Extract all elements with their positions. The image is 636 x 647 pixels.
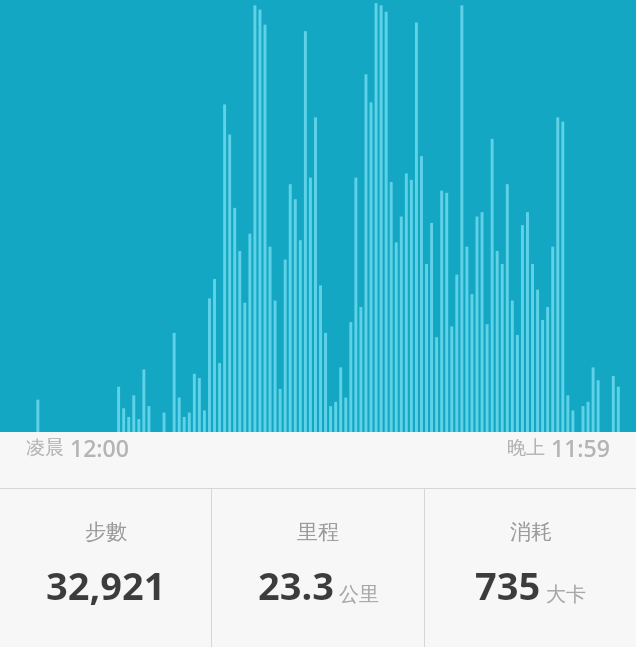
- staticText: 晚上: [507, 436, 545, 460]
- staticText: 凌晨: [26, 436, 64, 460]
- staticText: 23.3: [258, 559, 334, 611]
- staticText: 大卡: [546, 582, 586, 607]
- button[interactable]: 步數: [0, 489, 211, 647]
- staticText: 步數: [85, 519, 127, 545]
- staticText: 消耗: [510, 519, 552, 545]
- staticText: 735: [475, 559, 541, 611]
- button[interactable]: Daily activity chart: [0, 0, 636, 432]
- staticText: 11:59: [551, 432, 610, 463]
- button[interactable]: 里程: [212, 489, 424, 647]
- button[interactable]: 消耗: [425, 489, 636, 647]
- staticText: 里程: [297, 519, 339, 545]
- staticText: 公里: [339, 582, 379, 607]
- staticText: 32,921: [46, 559, 166, 611]
- staticText: 12:00: [70, 432, 129, 463]
